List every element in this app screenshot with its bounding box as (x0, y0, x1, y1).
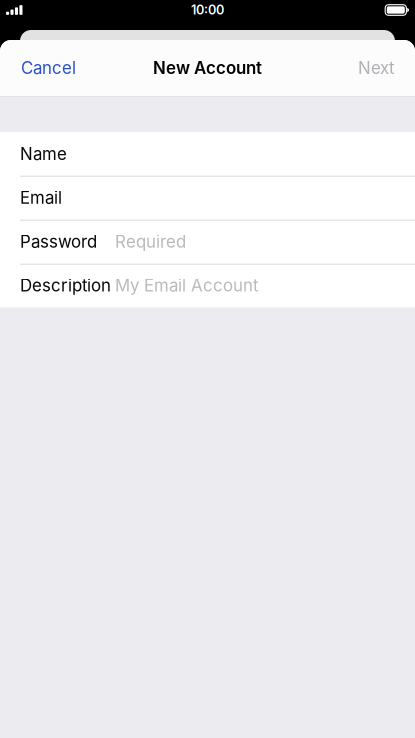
button[interactable]: Next (348, 49, 394, 87)
button[interactable]: Cancel (21, 49, 86, 87)
staticText: Cancel (21, 58, 76, 78)
button[interactable]: Password (0, 220, 415, 264)
staticText: Name (20, 144, 67, 164)
staticText: Description (20, 275, 111, 296)
button[interactable]: Description (0, 264, 415, 307)
staticText: Email (20, 187, 62, 208)
staticText: Required (115, 231, 186, 252)
button[interactable]: Name (0, 132, 415, 176)
button[interactable]: Email (0, 176, 415, 220)
staticText: My Email Account (115, 275, 258, 296)
staticText: New Account (153, 58, 262, 78)
staticText: Next (358, 58, 394, 78)
staticText: 10:00 (191, 2, 224, 18)
staticText: Password (20, 231, 97, 252)
